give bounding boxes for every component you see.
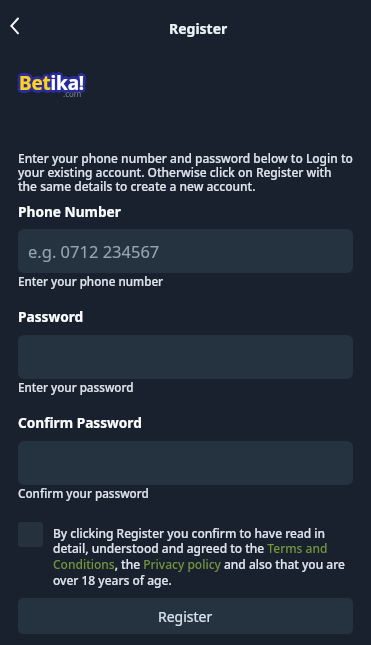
button[interactable]: e.g. 0712 234567 bbox=[18, 229, 353, 273]
staticText: Confirm Password bbox=[18, 413, 142, 432]
button[interactable]: Register bbox=[18, 598, 353, 634]
staticText: Betika! bbox=[21, 69, 87, 95]
staticText: Enter your phone number and password bel… bbox=[18, 150, 353, 194]
staticText: Register bbox=[169, 19, 228, 38]
staticText: Betika! bbox=[21, 71, 87, 97]
staticText: Betika! bbox=[21, 68, 87, 94]
staticText: Betika! bbox=[17, 72, 83, 98]
staticText: By clicking Register you confirm to have… bbox=[53, 525, 353, 589]
staticText: Betika! bbox=[18, 72, 84, 98]
staticText: Betika! bbox=[17, 68, 83, 94]
staticText: Confirm your password bbox=[18, 485, 149, 501]
staticText: Betika! bbox=[19, 67, 85, 93]
staticText: Register bbox=[158, 607, 213, 626]
staticText: Enter your password bbox=[18, 379, 134, 395]
staticText: Betika! bbox=[16, 70, 82, 96]
staticText: .com bbox=[63, 88, 82, 99]
staticText: Enter your phone number bbox=[18, 273, 164, 289]
staticText: Betika! bbox=[17, 68, 83, 94]
staticText: Betika! bbox=[20, 72, 86, 98]
staticText: Betika! bbox=[20, 68, 86, 94]
staticText: Betika! bbox=[19, 70, 85, 96]
staticText: Betika! bbox=[18, 68, 84, 94]
staticText: Betika! bbox=[21, 72, 87, 98]
staticText: Betika! bbox=[21, 68, 87, 94]
staticText: Betika! bbox=[17, 71, 83, 97]
staticText: e.g. 0712 234567 bbox=[28, 240, 160, 262]
staticText: Betika! bbox=[19, 73, 85, 99]
staticText: Betika! bbox=[17, 69, 83, 95]
staticText: Betika! bbox=[21, 72, 87, 98]
button[interactable]: Back bbox=[0, 6, 36, 42]
staticText: Betika! bbox=[22, 70, 88, 96]
staticText: Betika! bbox=[17, 72, 83, 98]
staticText: Phone Number bbox=[18, 202, 121, 221]
staticText: Password bbox=[18, 307, 84, 326]
